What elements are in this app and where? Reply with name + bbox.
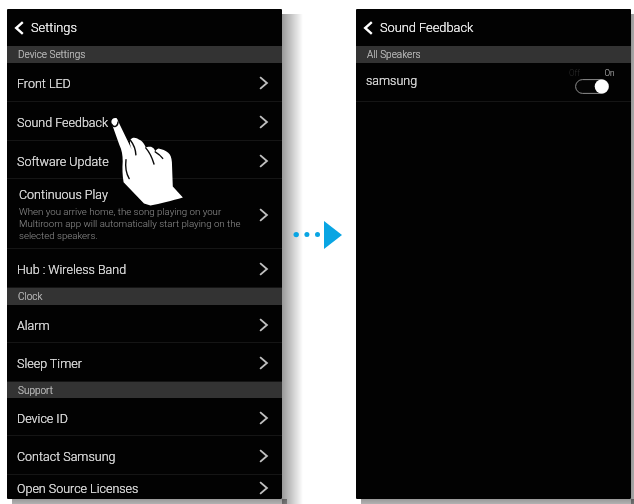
staticText: Device Settings [18,49,86,61]
button[interactable]: Sleep Timer [7,343,282,382]
staticText: Settings [31,20,77,35]
staticText: All Speakers [367,49,421,61]
staticText: Support [18,385,53,397]
button[interactable]: Navigate back [356,17,380,38]
staticText: Hub : Wireless Band [17,262,127,277]
staticText: Software Update [17,154,109,169]
staticText: Sound Feedback [17,115,109,130]
button[interactable]: Navigate back [7,17,31,38]
staticText: Contact Samsung [17,449,116,464]
button[interactable]: Alarm [7,305,282,343]
button[interactable]: Front LED [7,63,282,102]
staticText: Off [569,68,580,78]
staticText: When you arrive home, the song playing o… [19,206,222,217]
staticText: Alarm [17,318,50,333]
staticText: Sound Feedback [380,20,474,35]
staticText: Sleep Timer [17,356,82,371]
staticText: samsung [366,73,418,88]
staticText: selected speakers. [19,230,98,241]
button[interactable]: Sound feedback on [565,65,620,97]
staticText: Continuous Play [19,187,108,202]
button[interactable]: Contact Samsung [7,436,282,475]
staticText: Device ID [17,411,68,426]
button[interactable]: Continuous Play [7,179,282,249]
staticText: Clock [18,291,43,303]
button[interactable]: Software Update [7,141,282,179]
staticText: Open Source Licenses [17,481,139,496]
staticText: Multiroom app will automatically start p… [19,218,241,229]
button[interactable]: Sound Feedback [7,102,282,141]
staticText: Front LED [17,76,71,91]
button[interactable]: Hub : Wireless Band [7,249,282,288]
button[interactable]: Open Source Licenses [7,475,282,499]
button[interactable]: Device ID [7,398,282,436]
staticText: On [604,68,615,78]
